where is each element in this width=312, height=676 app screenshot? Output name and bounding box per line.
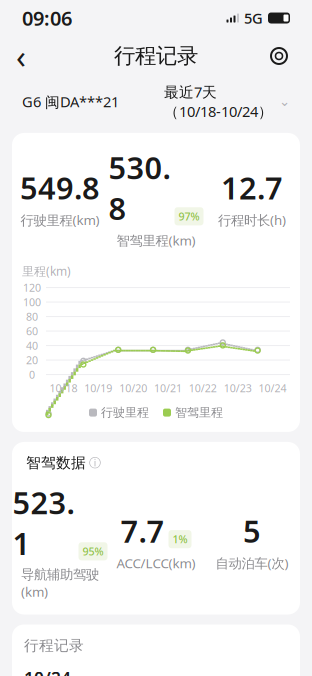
staticText: 80 — [26, 309, 38, 324]
staticText: ACC/LCC(km) — [116, 554, 195, 572]
staticText: 导航辅助驾驶(km) — [21, 566, 99, 600]
staticText: 97% — [178, 209, 199, 223]
staticText: 95% — [82, 544, 103, 558]
staticText: 530.8 — [108, 147, 170, 228]
staticText: 行驶里程 — [101, 405, 149, 420]
staticText: 10/20 — [119, 381, 147, 395]
staticText: 1% — [172, 532, 187, 546]
staticText: 最近7天（10/18-10/24） — [164, 82, 273, 121]
staticText: 10/23 — [224, 381, 252, 395]
staticText: 里程(km) — [22, 263, 71, 279]
staticText: 智驾数据 — [26, 454, 86, 472]
staticText: 行驶里程(km) — [20, 211, 99, 229]
button[interactable]: 返回 — [16, 39, 50, 73]
staticText: 自动泊车(次) — [215, 554, 288, 572]
staticText: ‹ — [16, 35, 26, 77]
staticText: ⓘ — [89, 456, 101, 470]
staticText: 10/21 — [154, 381, 182, 395]
staticText: 549.8 — [20, 167, 100, 208]
staticText: 40 — [26, 338, 38, 353]
staticText: 行程记录 — [114, 43, 198, 69]
staticText: 行程记录 — [24, 636, 84, 654]
button[interactable]: 最近7天（10/18-10/24） — [164, 82, 290, 121]
staticText: ⌄ — [279, 94, 290, 109]
staticText: 行程时长(h) — [218, 211, 286, 229]
staticText: 12.7 — [221, 167, 283, 208]
button[interactable]: 设置 — [262, 39, 296, 73]
staticText: 523.1 — [12, 482, 74, 563]
staticText: 100 — [23, 295, 41, 309]
staticText: 10/22 — [189, 381, 217, 395]
staticText: 120 — [23, 280, 41, 295]
staticText: 智驾里程(km) — [116, 231, 195, 249]
staticText: 60 — [26, 324, 38, 338]
staticText: 0 — [29, 367, 35, 382]
staticText: 10/19 — [84, 381, 112, 395]
staticText: 5G — [244, 8, 263, 28]
staticText: 7.7 — [120, 510, 164, 551]
staticText: 09:06 — [22, 5, 72, 31]
staticText: 5 — [243, 510, 261, 551]
staticText: 智驾里程 — [175, 405, 223, 420]
staticText: 10/24 — [259, 381, 287, 395]
staticText: 10/24 — [24, 666, 71, 676]
staticText: 10/18 — [49, 381, 77, 395]
staticText: 20 — [26, 353, 38, 367]
staticText: G6 闽DA***21 — [22, 92, 119, 111]
